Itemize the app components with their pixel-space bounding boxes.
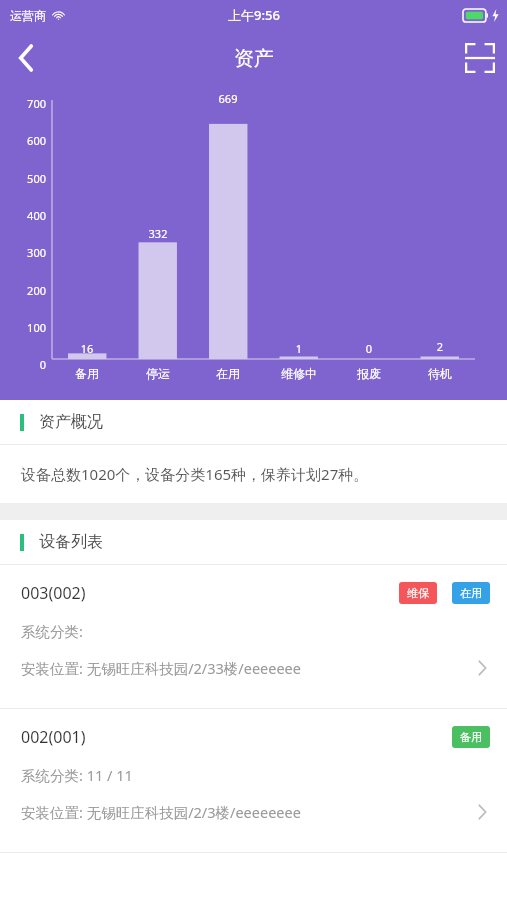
staticText: 002(001) [21,726,86,748]
staticText: 备用 [460,730,482,744]
button[interactable]: 002(001) [0,709,507,852]
staticText: 2 [420,339,460,354]
staticText: 500 [14,171,46,186]
staticText: 400 [14,208,46,223]
staticText: 待机 [412,366,468,381]
staticText: 系统分类: [21,621,83,641]
staticText: 669 [208,91,248,106]
staticText: 报废 [341,366,397,381]
staticText: 003(002) [21,582,86,604]
staticText: 0 [349,341,389,356]
staticText: 停运 [130,366,186,381]
staticText: 在用 [460,586,482,600]
staticText: 资产 [234,46,274,71]
staticText: 运营商 [10,8,46,23]
staticText: 安装位置: 无锡旺庄科技园/2/33楼/eeeeeee [21,658,301,678]
button[interactable]: Scan [453,31,507,85]
staticText: 上午9:56 [228,6,280,24]
staticText: 100 [14,320,46,335]
staticText: 700 [14,96,46,111]
staticText: 332 [138,226,178,241]
staticText: 300 [14,245,46,260]
button[interactable]: Back [0,32,52,84]
staticText: 600 [14,133,46,148]
staticText: 在用 [200,366,256,381]
staticText: 设备列表 [39,532,103,552]
button[interactable]: 003(002) [0,565,507,708]
staticText: 系统分类: 11 / 11 [21,765,133,785]
staticText: 备用 [59,366,115,381]
staticText: 设备总数1020个，设备分类165种，保养计划27种。 [21,464,369,484]
staticText: 维修中 [271,366,327,381]
staticText: 16 [67,341,107,356]
staticText: 安装位置: 无锡旺庄科技园/2/3楼/eeeeeeee [21,802,301,822]
staticText: 资产概况 [39,412,103,432]
staticText: 200 [14,283,46,298]
staticText: 0 [14,357,46,372]
staticText: 维保 [407,586,429,600]
staticText: 1 [279,341,319,356]
